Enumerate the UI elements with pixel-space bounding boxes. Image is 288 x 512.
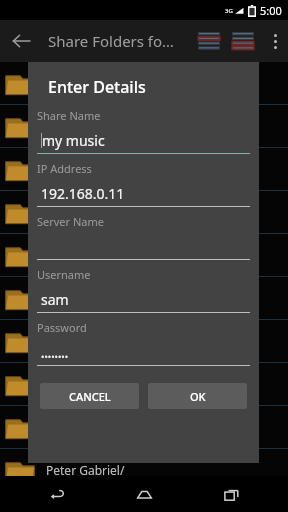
staticText: Podcasts/: [46, 290, 101, 306]
staticText: Server Name: [37, 214, 105, 229]
button[interactable]: Back: [0, 20, 42, 62]
staticText: Password: [37, 320, 87, 335]
button[interactable]: Ringtones/: [0, 406, 288, 448]
staticText: Share Folders fo…: [48, 31, 174, 51]
button[interactable]: Podcasts/: [0, 277, 288, 319]
staticText: IP Address: [37, 161, 92, 176]
staticText: CANCEL: [69, 389, 111, 404]
button[interactable]: Back: [27, 476, 87, 512]
staticText: Username: [37, 267, 91, 282]
button[interactable]: OK: [148, 383, 247, 409]
button[interactable]: Android/: [0, 320, 288, 362]
button[interactable]: Peter Gabriel/: [0, 449, 288, 491]
staticText: Share Name: [37, 108, 101, 123]
button[interactable]: Home: [114, 476, 174, 512]
staticText: Movies/: [46, 161, 91, 177]
staticText: Peter Gabriel/: [46, 462, 125, 478]
button[interactable]: DCIM/: [0, 234, 288, 276]
staticText: 5:00: [260, 3, 282, 18]
staticText: Documents/: [46, 376, 116, 392]
staticText: Enter Details: [48, 76, 146, 98]
staticText: OK: [190, 389, 206, 404]
button[interactable]: Download/: [0, 191, 288, 233]
staticText: my music: [42, 131, 105, 150]
staticText: 192.168.0.11: [41, 184, 125, 203]
staticText: Music/: [46, 75, 84, 91]
button[interactable]: Recent apps: [201, 476, 261, 512]
staticText: ••••••••: [41, 350, 69, 362]
staticText: DCIM/: [46, 247, 82, 263]
staticText: 3G: [225, 7, 233, 15]
button[interactable]: More options: [262, 20, 288, 62]
staticText: Pictures/: [46, 118, 96, 134]
button[interactable]: Shares: [230, 30, 256, 52]
button[interactable]: Music/: [0, 62, 288, 104]
staticText: sam: [41, 290, 69, 309]
button[interactable]: Servers: [196, 30, 222, 52]
staticText: Download/: [46, 204, 108, 220]
button[interactable]: Movies/: [0, 148, 288, 190]
button[interactable]: Documents/: [0, 363, 288, 405]
button[interactable]: Pictures/: [0, 105, 288, 147]
button[interactable]: CANCEL: [40, 383, 139, 409]
